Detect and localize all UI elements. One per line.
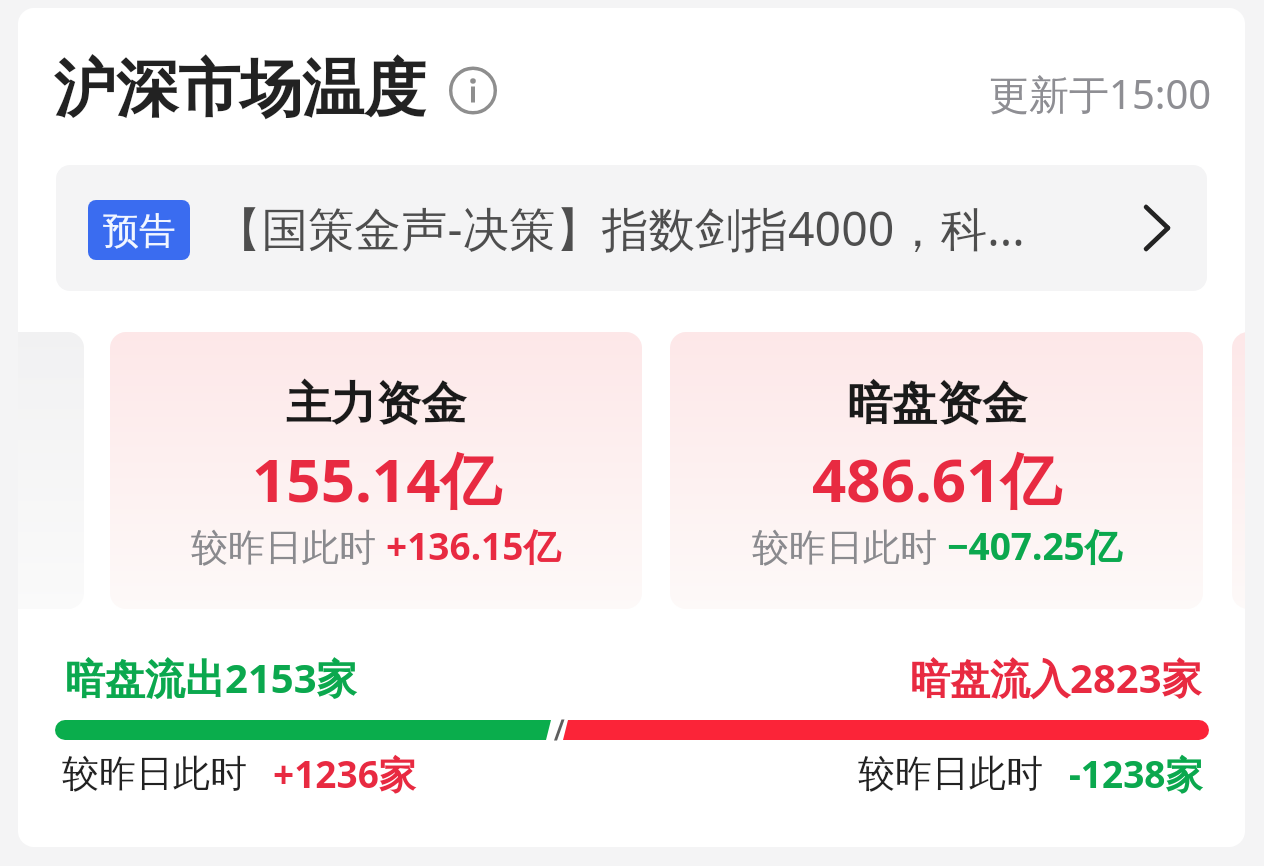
staticText: 较昨日此时 bbox=[858, 750, 1043, 797]
staticText: −407.25亿 bbox=[947, 520, 1122, 571]
staticText: -1238家 bbox=[1069, 748, 1203, 799]
staticText: 暗盘流入2823家 bbox=[910, 650, 1202, 705]
staticText: +136.15亿 bbox=[386, 520, 561, 571]
staticText: 486.61亿 bbox=[812, 438, 1061, 520]
staticText: 暗盘资金 bbox=[847, 376, 1027, 433]
button[interactable]: 主力资金 bbox=[110, 332, 642, 609]
staticText: +1236家 bbox=[273, 748, 416, 799]
button[interactable]: 预告 bbox=[56, 165, 1207, 291]
staticText: 较昨日此时 bbox=[752, 520, 947, 571]
staticText: 155.14亿 bbox=[252, 438, 501, 520]
staticText: 暗盘流出2153家 bbox=[65, 650, 357, 705]
staticText: 较昨日此时 bbox=[62, 750, 247, 797]
staticText: 较昨日此时 bbox=[191, 520, 386, 571]
staticText: 沪深市场温度 bbox=[54, 50, 426, 128]
staticText: 预告 bbox=[103, 208, 175, 253]
staticText: 主力资金 bbox=[286, 376, 466, 433]
staticText: 更新于15:00 bbox=[989, 66, 1212, 121]
button[interactable]: 暗盘资金 bbox=[670, 332, 1203, 609]
button[interactable]: Next metric bbox=[1232, 332, 1245, 609]
button[interactable]: About market temperature bbox=[447, 63, 499, 115]
staticText: 【国策金声-决策】指数剑指4000，科... bbox=[215, 196, 1025, 260]
